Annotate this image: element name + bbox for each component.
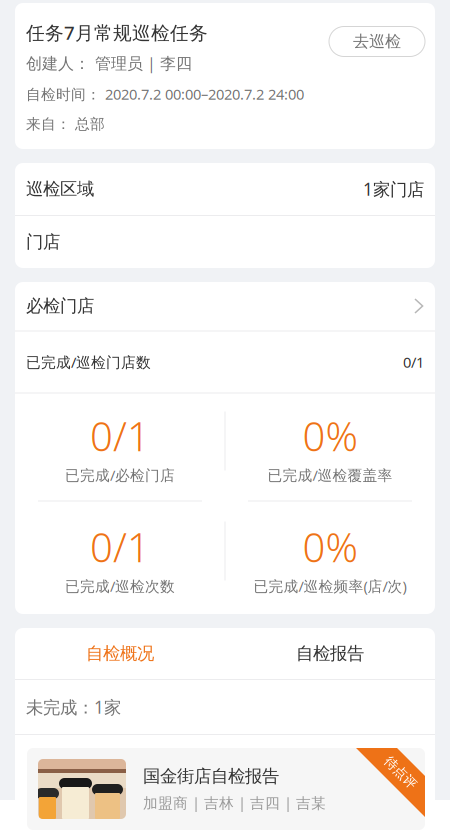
button[interactable]: 自检概况 (15, 628, 225, 679)
staticText: 必检门店 (26, 295, 94, 317)
staticText: 创建人： 管理员 | 李四 (26, 52, 192, 74)
staticText: 来自： 总部 (26, 115, 105, 133)
staticText: 去巡检 (353, 32, 401, 51)
staticText: 自检时间： 2020.7.2 00:00–2020.7.2 24:00 (26, 84, 304, 104)
staticText: 自检概况 (86, 643, 154, 664)
staticText: 0% (302, 520, 357, 573)
staticText: 自检报告 (296, 643, 364, 664)
button[interactable]: 自检报告 (225, 628, 435, 679)
staticText: 已完成/必检门店 (65, 465, 175, 485)
staticText: 0/1 (403, 352, 424, 372)
staticText: 任务7月常规巡检任务 (26, 20, 208, 45)
staticText: 加盟商 | 吉林 | 吉四 | 吉某 (143, 793, 326, 812)
staticText: 0% (302, 409, 357, 462)
staticText: 0/1 (90, 520, 150, 573)
staticText: 国金街店自检报告 (143, 766, 279, 787)
staticText: 已完成/巡检次数 (65, 576, 175, 596)
staticText: 巡检区域 (26, 178, 94, 200)
staticText: 已完成/巡检门店数 (26, 352, 151, 372)
staticText: 待点评 (381, 764, 420, 781)
button[interactable]: 国金街店自检报告 (15, 735, 435, 830)
staticText: 已完成/巡检覆盖率 (267, 465, 392, 485)
staticText: 未完成：1家 (26, 695, 121, 718)
staticText: 已完成/巡检频率(店/次) (253, 576, 406, 596)
staticText: 1家门店 (363, 177, 424, 200)
staticText: 0/1 (90, 409, 150, 462)
button[interactable]: 去巡检 (329, 26, 425, 56)
button[interactable]: 必检门店 (15, 281, 435, 330)
staticText: 门店 (26, 231, 60, 253)
